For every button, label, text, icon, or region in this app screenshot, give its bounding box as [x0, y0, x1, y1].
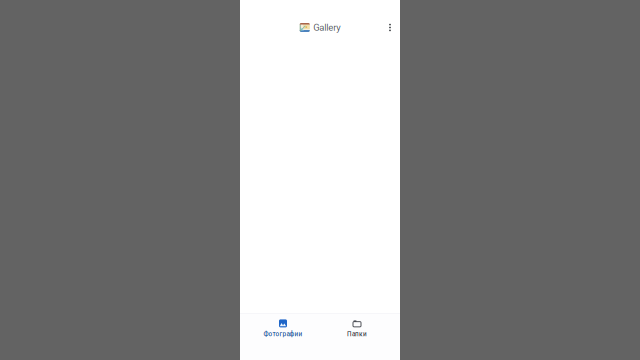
button[interactable]: More options — [382, 14, 398, 40]
button[interactable]: Папки — [325, 314, 389, 360]
staticText: Фотографии — [263, 330, 302, 338]
button[interactable]: Фотографии — [251, 314, 315, 360]
staticText: Gallery — [313, 22, 340, 33]
staticText: Папки — [347, 330, 367, 338]
